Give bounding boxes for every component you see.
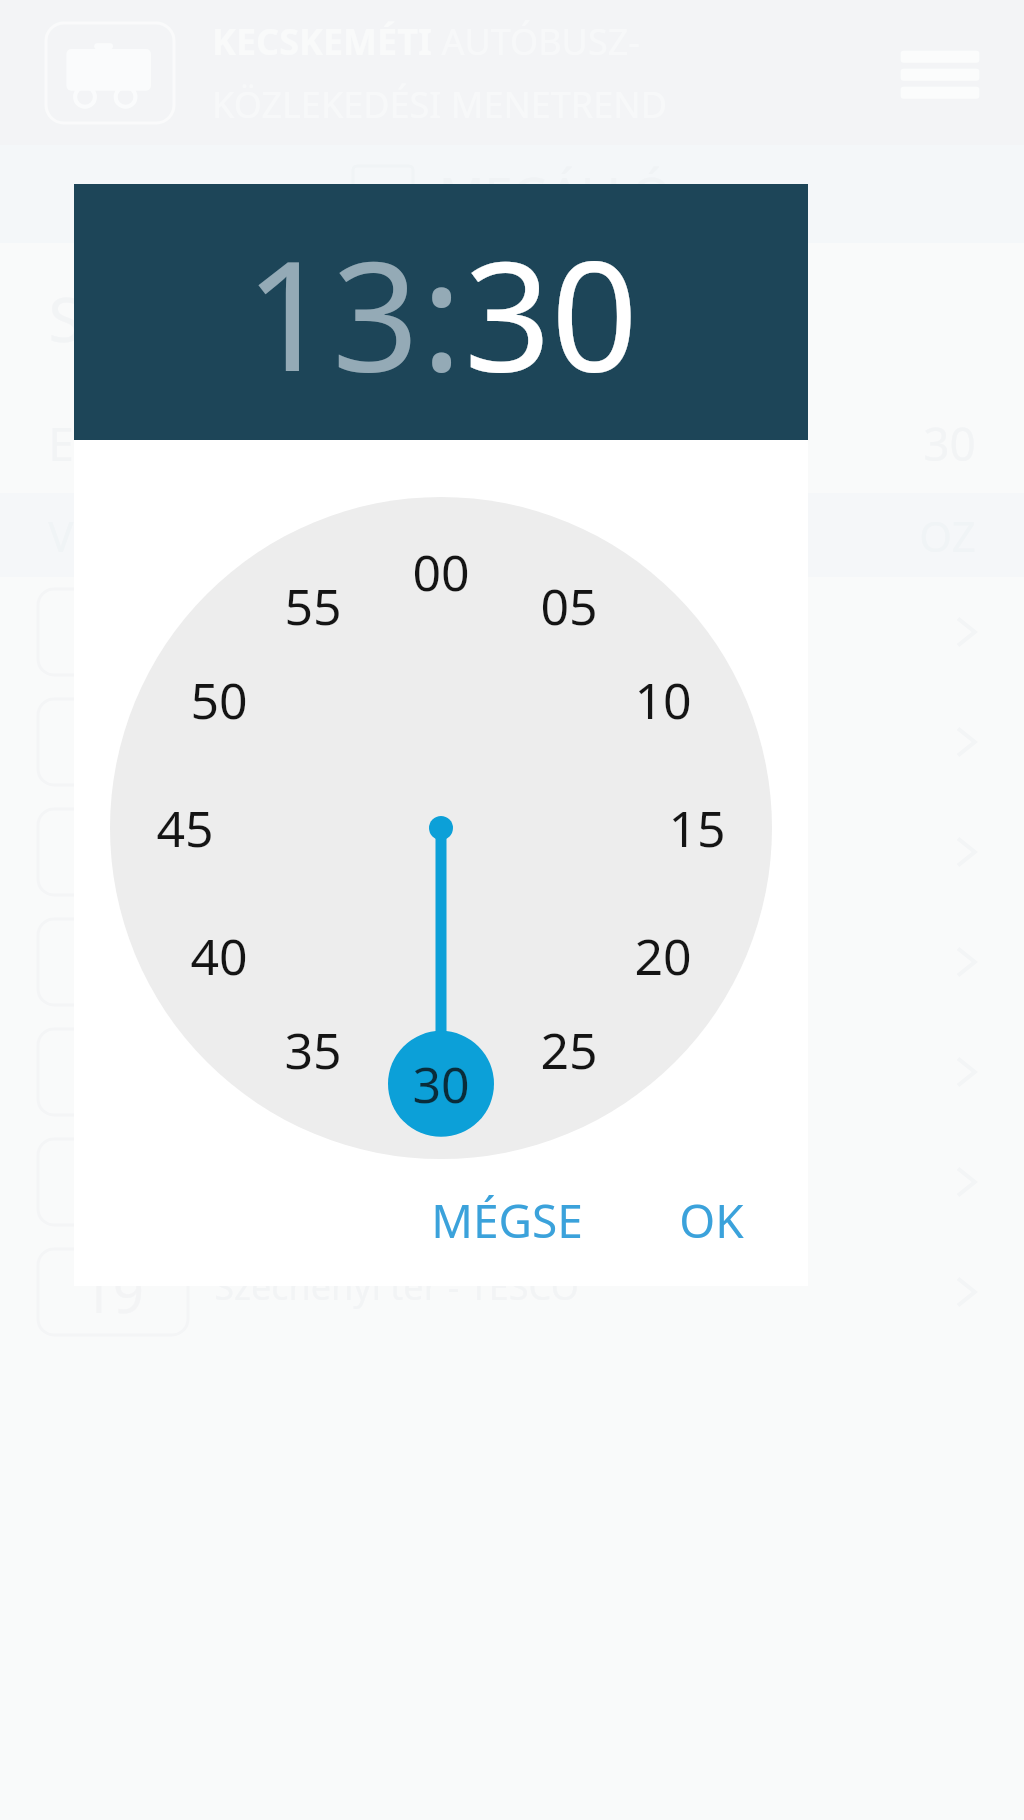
staticText: S bbox=[48, 276, 83, 360]
button[interactable]: 25 bbox=[514, 1014, 624, 1086]
staticText: 40 bbox=[190, 922, 248, 990]
button[interactable] bbox=[0, 577, 1024, 687]
button[interactable]: 40 bbox=[164, 920, 274, 992]
button[interactable]: 35 bbox=[258, 1014, 368, 1086]
staticText: 15 bbox=[668, 794, 726, 862]
staticText: 05 bbox=[540, 572, 598, 640]
button[interactable]: 05 bbox=[514, 570, 624, 642]
button[interactable]: 14 bbox=[0, 1127, 1024, 1237]
button[interactable] bbox=[0, 797, 1024, 907]
button[interactable]: 19 bbox=[0, 1237, 1024, 1347]
staticText: 45 perc bbox=[380, 1078, 526, 1127]
button[interactable]: Bus logo bbox=[44, 21, 176, 125]
button[interactable]: 30 bbox=[462, 209, 640, 416]
button[interactable]: 45 bbox=[130, 792, 240, 864]
staticText: 25 bbox=[540, 1016, 598, 1084]
staticText: Széchenyi tér - Margaréta Otthon bbox=[214, 1127, 776, 1176]
button[interactable]: 10 bbox=[608, 664, 718, 736]
staticText: 13:07 bbox=[232, 1085, 340, 1120]
staticText: 30 bbox=[464, 209, 638, 416]
staticText: 53 perc bbox=[380, 1188, 526, 1237]
button[interactable]: 13 bbox=[243, 209, 421, 416]
staticText: 35 bbox=[284, 1016, 342, 1084]
staticText: 19 bbox=[82, 1255, 144, 1329]
staticText: MÉGSE bbox=[431, 1189, 583, 1252]
staticText: 20 bbox=[634, 922, 692, 990]
staticText: 45 bbox=[156, 794, 214, 862]
button[interactable]: 00 bbox=[386, 536, 496, 608]
button[interactable]: 55 bbox=[258, 570, 368, 642]
button[interactable]: 15 bbox=[642, 792, 752, 864]
button[interactable] bbox=[0, 907, 1024, 1017]
button[interactable]: OK bbox=[659, 1169, 764, 1272]
staticText: Széchenyi tér - TESCO bbox=[214, 1262, 579, 1311]
staticText: 00 bbox=[412, 538, 470, 606]
button[interactable]: 20 bbox=[608, 920, 718, 992]
staticText: VO bbox=[48, 507, 106, 564]
staticText: OK bbox=[679, 1189, 744, 1252]
button[interactable]: 50 bbox=[164, 664, 274, 736]
button[interactable]: 30 bbox=[386, 1048, 496, 1120]
button[interactable] bbox=[0, 687, 1024, 797]
staticText: Olpark bbox=[214, 1017, 328, 1066]
staticText: MEGÁLLÓ bbox=[439, 160, 671, 228]
staticText: 10 bbox=[634, 666, 692, 734]
staticText: 55 bbox=[284, 572, 342, 640]
staticText: : bbox=[421, 209, 462, 416]
button[interactable]: MÉGSE bbox=[411, 1169, 603, 1272]
staticText: 30 bbox=[412, 1050, 470, 1118]
staticText: 50 bbox=[190, 666, 248, 734]
staticText: 13 bbox=[245, 209, 419, 416]
button[interactable]: Menu bbox=[892, 30, 988, 116]
button[interactable]: 22 bbox=[0, 1017, 1024, 1127]
